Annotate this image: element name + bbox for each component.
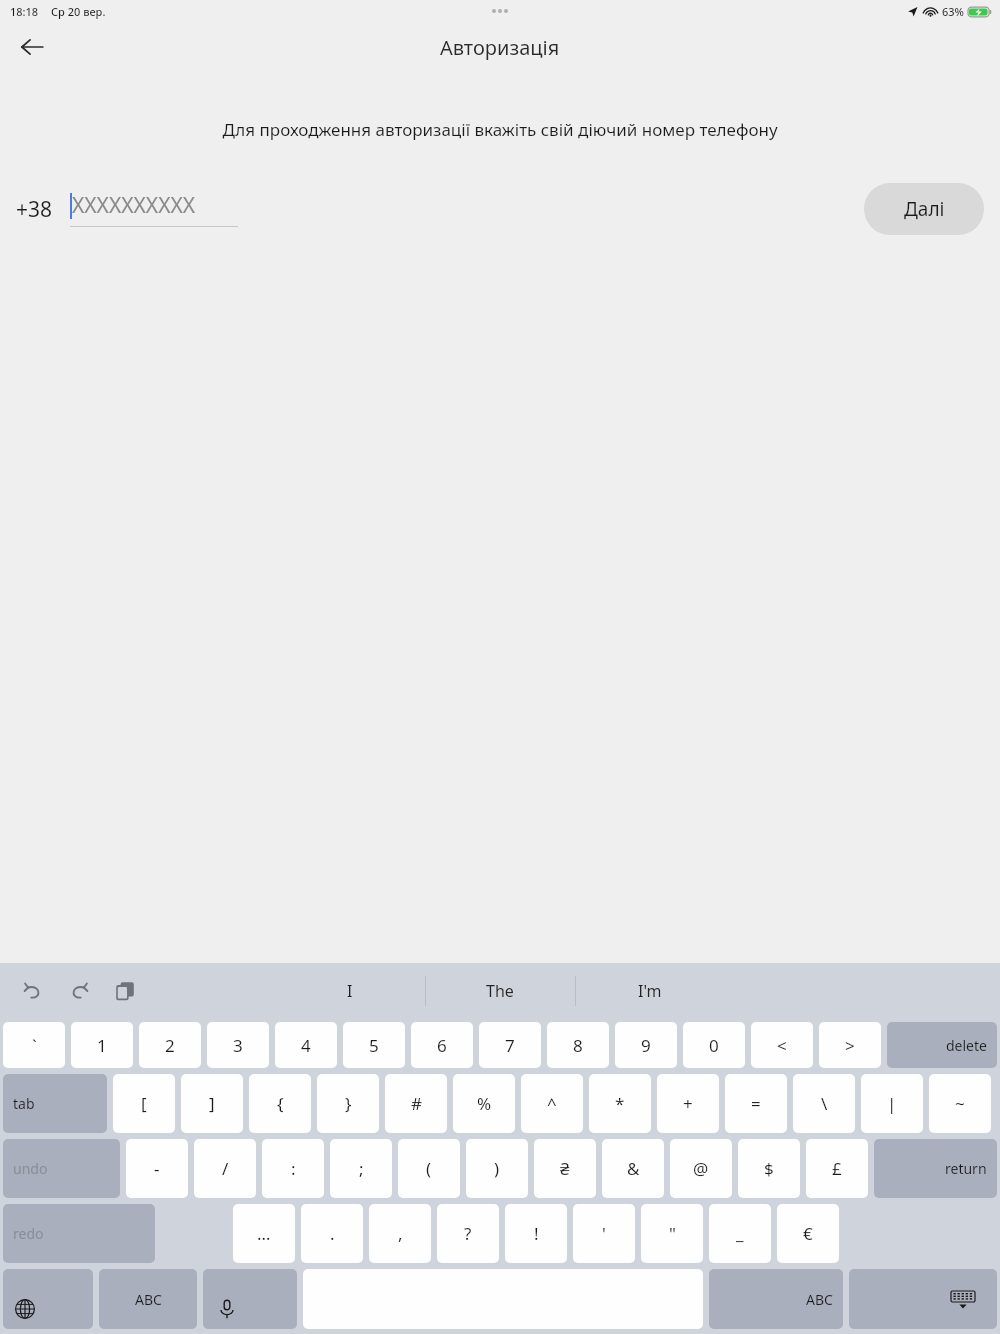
button[interactable]: ₴ <box>534 1139 596 1198</box>
button[interactable]: = <box>725 1074 787 1133</box>
button[interactable]: 0 <box>683 1022 745 1068</box>
button[interactable]: & <box>602 1139 664 1198</box>
button[interactable]: ! <box>505 1204 567 1263</box>
button[interactable]: \ <box>793 1074 855 1133</box>
staticText: ₴ <box>560 1157 570 1180</box>
staticText: [ <box>141 1092 147 1115</box>
staticText: / <box>222 1157 229 1180</box>
staticText: ABC <box>135 1290 162 1309</box>
button[interactable]: : <box>262 1139 324 1198</box>
staticText: & <box>627 1157 640 1180</box>
button[interactable]: undo <box>3 1139 120 1198</box>
button[interactable]: ] <box>181 1074 243 1133</box>
button[interactable]: [ <box>113 1074 175 1133</box>
button[interactable]: 6 <box>411 1022 473 1068</box>
button[interactable]: + <box>657 1074 719 1133</box>
button[interactable]: ABC <box>709 1269 843 1329</box>
button[interactable]: ` <box>3 1022 65 1068</box>
button[interactable]: 3 <box>207 1022 269 1068</box>
button[interactable]: ' <box>573 1204 635 1263</box>
button[interactable]: 1 <box>71 1022 133 1068</box>
button[interactable]: < <box>751 1022 813 1068</box>
button[interactable]: . <box>301 1204 363 1263</box>
button[interactable]: Paste <box>110 976 140 1006</box>
staticText: Далі <box>904 196 945 222</box>
staticText: ) <box>494 1157 500 1180</box>
button[interactable]: … <box>233 1204 295 1263</box>
button[interactable]: # <box>385 1074 447 1133</box>
staticText: * <box>615 1092 625 1115</box>
staticText: 18:18 <box>10 4 39 19</box>
button[interactable]: @ <box>670 1139 732 1198</box>
button[interactable]: } <box>317 1074 379 1133</box>
button[interactable]: ~ <box>929 1074 991 1133</box>
staticText: ; <box>359 1157 364 1180</box>
staticText: ` <box>32 1034 37 1057</box>
staticText: … <box>257 1222 271 1245</box>
button[interactable]: ^ <box>521 1074 583 1133</box>
staticText: } <box>345 1092 352 1115</box>
staticText: 1 <box>97 1034 107 1057</box>
staticText: ( <box>426 1157 432 1180</box>
staticText: The <box>486 980 514 1002</box>
button[interactable]: % <box>453 1074 515 1133</box>
button[interactable]: " <box>641 1204 703 1263</box>
staticText: I'm <box>638 980 662 1002</box>
staticText: 5 <box>369 1034 379 1057</box>
button[interactable]: 5 <box>343 1022 405 1068</box>
staticText: € <box>803 1222 813 1245</box>
staticText: XXXXXXXXXX <box>72 191 196 220</box>
button[interactable]: Redo <box>64 976 94 1006</box>
staticText: : <box>291 1157 296 1180</box>
staticText: . <box>330 1222 335 1245</box>
staticText: - <box>154 1157 160 1180</box>
button[interactable]: return <box>874 1139 997 1198</box>
button[interactable]: € <box>777 1204 839 1263</box>
button[interactable]: The <box>440 963 560 1019</box>
staticText: ~ <box>955 1092 965 1115</box>
button[interactable]: | <box>861 1074 923 1133</box>
staticText: undo <box>13 1159 48 1178</box>
button[interactable]: ? <box>437 1204 499 1263</box>
button[interactable]: XXXXXXXXXX <box>70 191 238 227</box>
staticText: , <box>398 1222 403 1245</box>
staticText: # <box>411 1092 422 1115</box>
button[interactable]: ( <box>398 1139 460 1198</box>
button[interactable]: 4 <box>275 1022 337 1068</box>
button[interactable]: tab <box>3 1074 107 1133</box>
button[interactable]: Undo <box>18 976 48 1006</box>
button[interactable]: Back <box>8 23 56 71</box>
button[interactable]: - <box>126 1139 188 1198</box>
staticText: ] <box>209 1092 215 1115</box>
button[interactable]: ; <box>330 1139 392 1198</box>
button[interactable]: Change keyboard language <box>3 1269 93 1329</box>
button[interactable]: redo <box>3 1204 155 1263</box>
staticText: 4 <box>301 1034 311 1057</box>
button[interactable]: 8 <box>547 1022 609 1068</box>
button[interactable]: , <box>369 1204 431 1263</box>
button[interactable]: { <box>249 1074 311 1133</box>
button[interactable]: Dictation <box>203 1269 297 1329</box>
button[interactable]: delete <box>887 1022 997 1068</box>
button[interactable]: 9 <box>615 1022 677 1068</box>
button[interactable]: / <box>194 1139 256 1198</box>
button[interactable]: 7 <box>479 1022 541 1068</box>
button[interactable]: $ <box>738 1139 800 1198</box>
staticText: tab <box>13 1094 35 1113</box>
button[interactable]: 2 <box>139 1022 201 1068</box>
staticText: +38 <box>16 195 53 224</box>
button[interactable]: I'm <box>590 963 710 1019</box>
button[interactable]: ) <box>466 1139 528 1198</box>
button[interactable]: £ <box>806 1139 868 1198</box>
button[interactable]: Далі <box>864 183 984 235</box>
button[interactable]: ABC <box>99 1269 197 1329</box>
button[interactable]: I <box>290 963 410 1019</box>
button[interactable]: Hide keyboard <box>849 1269 997 1329</box>
button[interactable]: * <box>589 1074 651 1133</box>
button[interactable]: _ <box>709 1204 771 1263</box>
staticText: @ <box>693 1157 709 1180</box>
staticText: 0 <box>709 1034 719 1057</box>
button[interactable]: > <box>819 1022 881 1068</box>
staticText: > <box>845 1034 855 1057</box>
